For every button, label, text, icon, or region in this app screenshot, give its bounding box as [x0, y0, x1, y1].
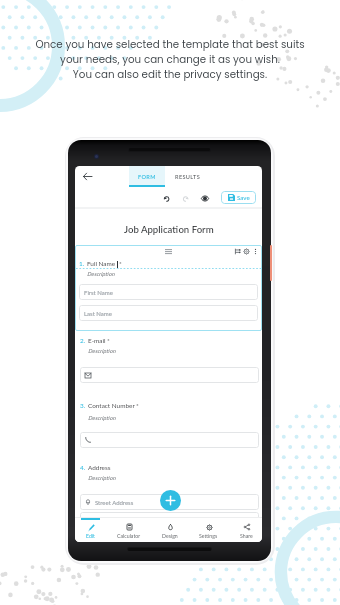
button[interactable] — [80, 512, 259, 528]
staticText: * — [119, 260, 122, 268]
button[interactable] — [80, 367, 259, 383]
staticText: 2. — [80, 337, 86, 345]
staticText: Design — [162, 533, 178, 539]
staticText: Share — [240, 533, 253, 539]
button[interactable]: Field settings — [242, 247, 251, 256]
button[interactable] — [80, 432, 259, 448]
staticText: FORM — [138, 173, 156, 180]
staticText: First Name — [84, 289, 113, 296]
button[interactable]: Redo — [177, 190, 193, 206]
staticText: Contact Number — [88, 402, 135, 410]
button[interactable]: Street Address — [80, 494, 259, 510]
staticText: 1. — [79, 260, 85, 268]
button[interactable]: Share — [228, 517, 262, 542]
button[interactable]: FORM — [129, 166, 165, 187]
staticText: * — [136, 402, 139, 410]
button[interactable]: Settings — [190, 517, 227, 542]
staticText: * — [107, 337, 110, 345]
button[interactable]: Add question — [160, 490, 181, 511]
staticText: Description — [87, 271, 115, 277]
staticText: Description — [88, 348, 116, 354]
staticText: Full Name — [87, 260, 116, 268]
staticText: Settings — [199, 533, 218, 539]
button[interactable]: Design — [151, 517, 188, 542]
button[interactable]: Save — [221, 191, 256, 204]
button[interactable]: Logic — [233, 247, 242, 256]
button[interactable]: Edit — [75, 517, 109, 542]
button[interactable]: Calculator — [110, 517, 147, 542]
staticText: Once you have selected the template that… — [35, 37, 305, 81]
staticText: Description — [88, 475, 116, 481]
staticText: Job Application Form — [124, 224, 214, 236]
staticText: Street Address — [95, 499, 134, 506]
staticText: Edit — [86, 533, 95, 539]
staticText: Description — [88, 415, 116, 421]
button[interactable]: Last Name — [79, 305, 258, 321]
staticText: Calculator — [117, 533, 141, 539]
button[interactable]: Preview — [197, 190, 213, 206]
button[interactable]: RESULTS — [165, 166, 211, 187]
staticText: Last Name — [84, 310, 112, 317]
staticText: RESULTS — [175, 173, 201, 180]
button[interactable]: More options — [251, 247, 260, 256]
button[interactable]: Undo — [158, 190, 174, 206]
staticText: 3. — [80, 402, 86, 410]
button[interactable]: First Name — [79, 284, 258, 300]
staticText: 4. — [80, 464, 86, 472]
button[interactable]: Back — [78, 166, 97, 187]
staticText: Address — [88, 464, 111, 472]
staticText: Save — [237, 194, 250, 201]
staticText: E-mail — [88, 337, 106, 345]
